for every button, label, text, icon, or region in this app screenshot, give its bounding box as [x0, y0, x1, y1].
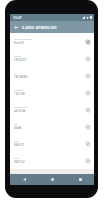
staticText: CPH2307	[14, 58, 27, 62]
staticText: ####	[14, 126, 22, 130]
staticText: 74C9A9B2	[14, 75, 28, 79]
button[interactable]: IMEI	[10, 118, 94, 135]
staticText: NOME DO APARELHO	[14, 38, 33, 40]
button[interactable]: MODELO	[10, 50, 94, 67]
staticText: 10:47	[13, 15, 22, 20]
button[interactable]: Copy	[82, 101, 94, 118]
button[interactable]: IMEI 1	[10, 135, 94, 152]
button[interactable]: NOME DO APARELHO	[10, 33, 94, 50]
staticText: 8649 22	[14, 160, 25, 164]
staticText: E-MEU APARELHO	[22, 25, 57, 30]
button[interactable]: Copy	[82, 152, 94, 169]
staticText: ENDEREÇO	[14, 89, 24, 91]
button[interactable]: Copy	[82, 135, 94, 152]
button[interactable]: Home	[38, 174, 66, 185]
staticText: a4:50:46	[14, 109, 26, 113]
staticText: IMEI	[14, 123, 18, 125]
button[interactable]: ENDEREÇO	[10, 84, 94, 101]
button[interactable]: Back	[10, 174, 38, 185]
button[interactable]: Copy	[82, 67, 94, 84]
staticText: ENDEREÇO MAC	[14, 106, 28, 108]
button[interactable]: SN	[10, 67, 94, 84]
staticText: SN	[14, 72, 17, 74]
button[interactable]: Copy	[82, 33, 94, 50]
staticText: 8649 21	[14, 143, 25, 147]
staticText: IMEI 2	[14, 157, 20, 159]
button[interactable]: ENDEREÇO MAC	[10, 101, 94, 118]
button[interactable]: Copy	[82, 50, 94, 67]
staticText: 192.168	[14, 92, 25, 96]
button[interactable]: IMEI 2	[10, 152, 94, 169]
staticText: MODELO	[14, 55, 22, 57]
staticText: Find X5	[14, 41, 24, 45]
staticText: IMEI 1	[14, 140, 20, 142]
button[interactable]: Recent apps	[66, 174, 94, 185]
button[interactable]: Copy	[82, 118, 94, 135]
button[interactable]: Back	[10, 21, 22, 33]
button[interactable]: Copy	[82, 84, 94, 101]
